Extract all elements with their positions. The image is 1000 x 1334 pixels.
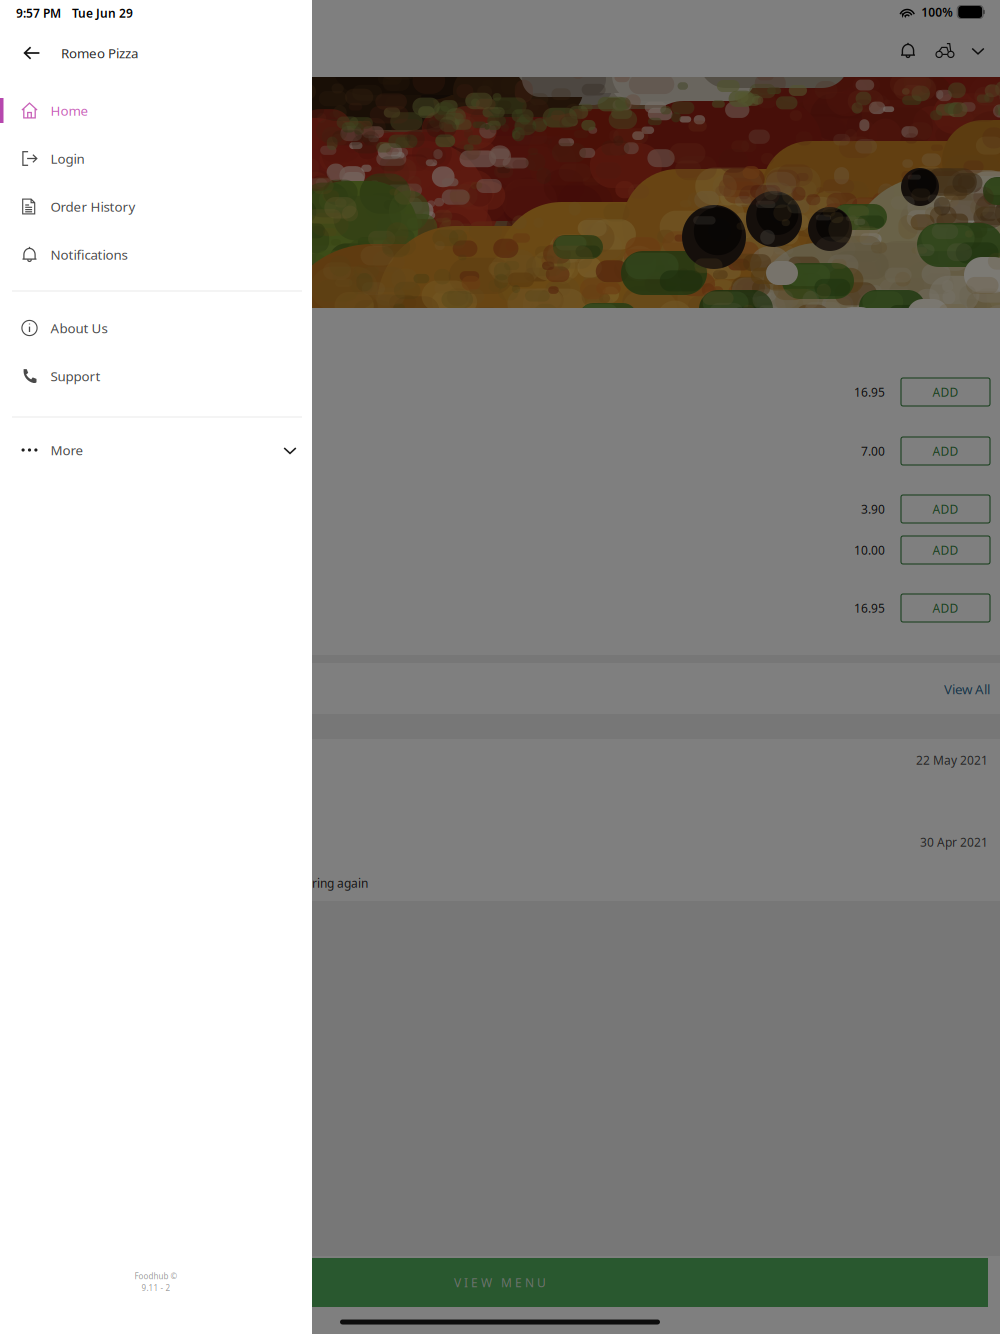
staticText: V I E W M E N U — [454, 1274, 546, 1290]
button[interactable]: Back — [20, 38, 44, 68]
button[interactable]: View All — [940, 674, 994, 704]
button[interactable]: ADD — [901, 536, 990, 564]
staticText: Home — [50, 102, 88, 119]
button[interactable]: ADD — [901, 594, 990, 622]
staticText: About Us — [50, 319, 107, 337]
button[interactable]: Home — [0, 0, 312, 1334]
staticText: ADD — [932, 501, 958, 517]
staticText: 30 Apr 2021 — [920, 834, 988, 850]
button[interactable]: Order History — [0, 0, 312, 1334]
staticText: Foodhub © — [134, 1271, 177, 1281]
staticText: 22 May 2021 — [916, 752, 988, 768]
button[interactable]: More — [0, 0, 312, 1334]
button[interactable]: ADD — [901, 378, 990, 406]
staticText: 16.95 — [854, 600, 885, 616]
button[interactable]: Login — [0, 0, 312, 1334]
button[interactable]: Notifications — [894, 32, 922, 68]
button[interactable]: Delivery options — [930, 32, 960, 68]
staticText: ring again — [312, 875, 368, 891]
staticText: 9.11 - 2 — [141, 1282, 170, 1293]
button[interactable]: V I E W M E N U — [12, 1258, 988, 1307]
staticText: Order History — [50, 198, 135, 215]
staticText: Support — [50, 367, 100, 385]
staticText: ADD — [932, 600, 958, 616]
staticText: Login — [50, 150, 84, 167]
staticText: 9:57 PM — [16, 5, 61, 21]
button[interactable]: ADD — [901, 495, 990, 523]
staticText: Romeo Pizza — [61, 44, 138, 62]
staticText: 3.90 — [861, 501, 885, 517]
staticText: Tue Jun 29 — [72, 5, 133, 21]
staticText: ADD — [932, 542, 958, 558]
button[interactable]: Expand — [965, 32, 991, 68]
staticText: 100% — [921, 4, 953, 20]
button[interactable]: About Us — [0, 0, 312, 1334]
staticText: Notifications — [50, 246, 127, 263]
staticText: 10.00 — [854, 542, 885, 558]
button[interactable]: Support — [0, 0, 312, 1334]
staticText: 16.95 — [854, 384, 885, 400]
button[interactable]: ADD — [901, 437, 990, 465]
staticText: More — [50, 441, 83, 459]
staticText: ADD — [932, 384, 958, 400]
staticText: 7.00 — [861, 443, 885, 459]
staticText: View All — [944, 680, 990, 698]
staticText: ADD — [932, 443, 958, 459]
button[interactable]: Notifications — [0, 0, 312, 1334]
